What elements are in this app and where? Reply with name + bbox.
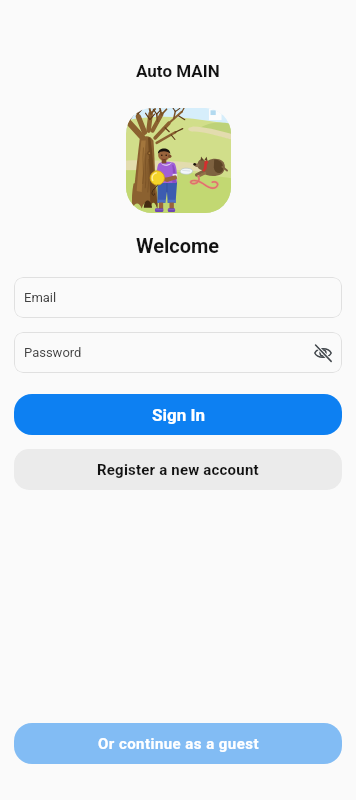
button[interactable]: Email <box>14 277 342 318</box>
button[interactable]: Register a new account <box>14 449 342 490</box>
staticText: Register a new account <box>97 461 259 479</box>
staticText: Auto MAIN <box>136 61 220 81</box>
staticText: Welcome <box>136 234 220 257</box>
staticText: Or continue as a guest <box>98 735 259 753</box>
staticText: Email <box>24 290 57 305</box>
button[interactable]: Show password <box>311 341 335 365</box>
staticText: Sign In <box>152 405 205 425</box>
staticText: Password <box>24 345 82 360</box>
button[interactable]: Password <box>14 332 342 373</box>
button[interactable]: Or continue as a guest <box>14 723 342 764</box>
button[interactable]: Sign In <box>14 394 342 435</box>
